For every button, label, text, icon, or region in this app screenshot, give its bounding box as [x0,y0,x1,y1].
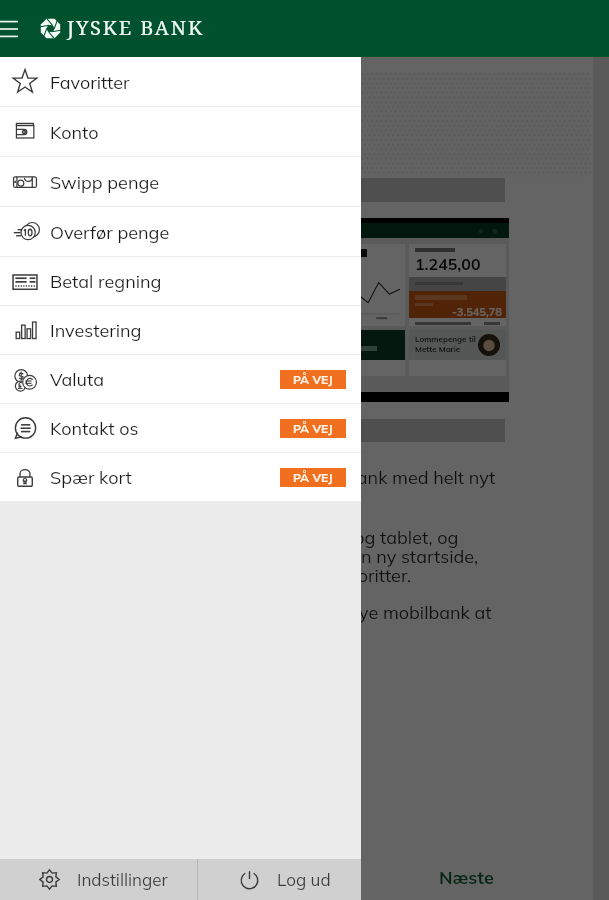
staticText: 1.245,00 [415,254,481,274]
staticText: Lommepenge til [415,334,476,344]
staticText: Spær kort [50,466,132,489]
button[interactable]: Betal regning [0,257,361,306]
staticText: Næste [439,866,494,889]
staticText: Overfør penge [50,221,170,244]
button[interactable]: Log ud [198,859,361,900]
staticText: Her kan du se, hvad du kan med den nye m… [41,601,492,624]
staticText: PÅ VEJ [293,421,333,436]
button[interactable]: Overfør penge [0,207,361,257]
button[interactable]: Swipp penge [0,157,361,207]
staticText: Investering [50,319,142,342]
button[interactable]: Investering [0,306,361,355]
staticText: indeholder bl.a. nye funktioner på en ny… [71,545,479,568]
staticText: Konto [50,121,99,144]
staticText: PÅ VEJ [293,372,333,387]
staticText: hvor du kan samle dine egne favoritter. [89,564,412,587]
button[interactable]: Indstillinger [0,859,197,900]
button[interactable]: Menu [0,8,18,50]
staticText: Valuta [50,368,105,391]
staticText: Mobilbanken findes til mobil og tablet, … [118,526,459,549]
staticText: Mette Marie [415,344,461,354]
staticText: Log ud [277,869,331,890]
staticText: PÅ VEJ [293,470,333,485]
button[interactable]: Næste [406,855,526,900]
staticText: JYSKE BANK [67,14,204,41]
button[interactable]: Spær kort [0,453,361,502]
staticText: Kontakt os [50,417,139,440]
button[interactable]: Favoritter [0,57,361,107]
staticText: -3.545,78 [452,305,502,319]
staticText: Swipp penge [50,171,160,194]
staticText: Indstillinger [77,869,168,890]
button[interactable]: Valuta [0,355,361,404]
button[interactable]: Konto [0,107,361,157]
button[interactable]: Kontakt os [0,404,361,453]
staticText: Favoritter [50,71,130,94]
staticText: Betal regning [50,270,162,293]
staticText: Få overblik i din nye mobilbank med helt… [132,466,496,489]
